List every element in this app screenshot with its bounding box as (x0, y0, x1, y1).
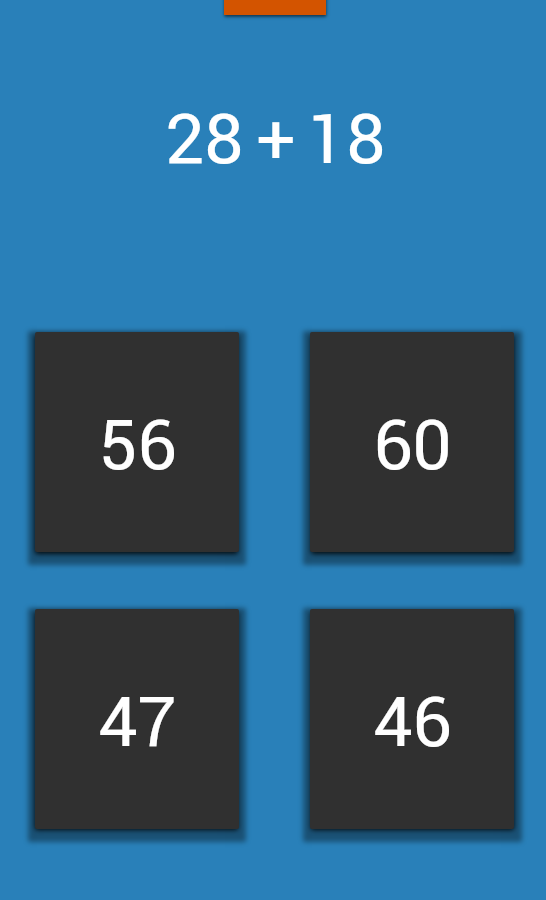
staticText: 56 (98, 397, 177, 497)
staticText: 47 (98, 674, 177, 774)
button[interactable]: Answer 60 (310, 332, 514, 552)
staticText: 28 (165, 91, 244, 191)
button[interactable]: Answer 46 (310, 609, 514, 829)
button[interactable]: Answer 56 (35, 332, 239, 552)
staticText: 18 (307, 91, 386, 191)
staticText: 60 (373, 397, 452, 497)
staticText: + (256, 91, 296, 191)
staticText: 46 (373, 674, 452, 774)
button[interactable]: Answer 47 (35, 609, 239, 829)
